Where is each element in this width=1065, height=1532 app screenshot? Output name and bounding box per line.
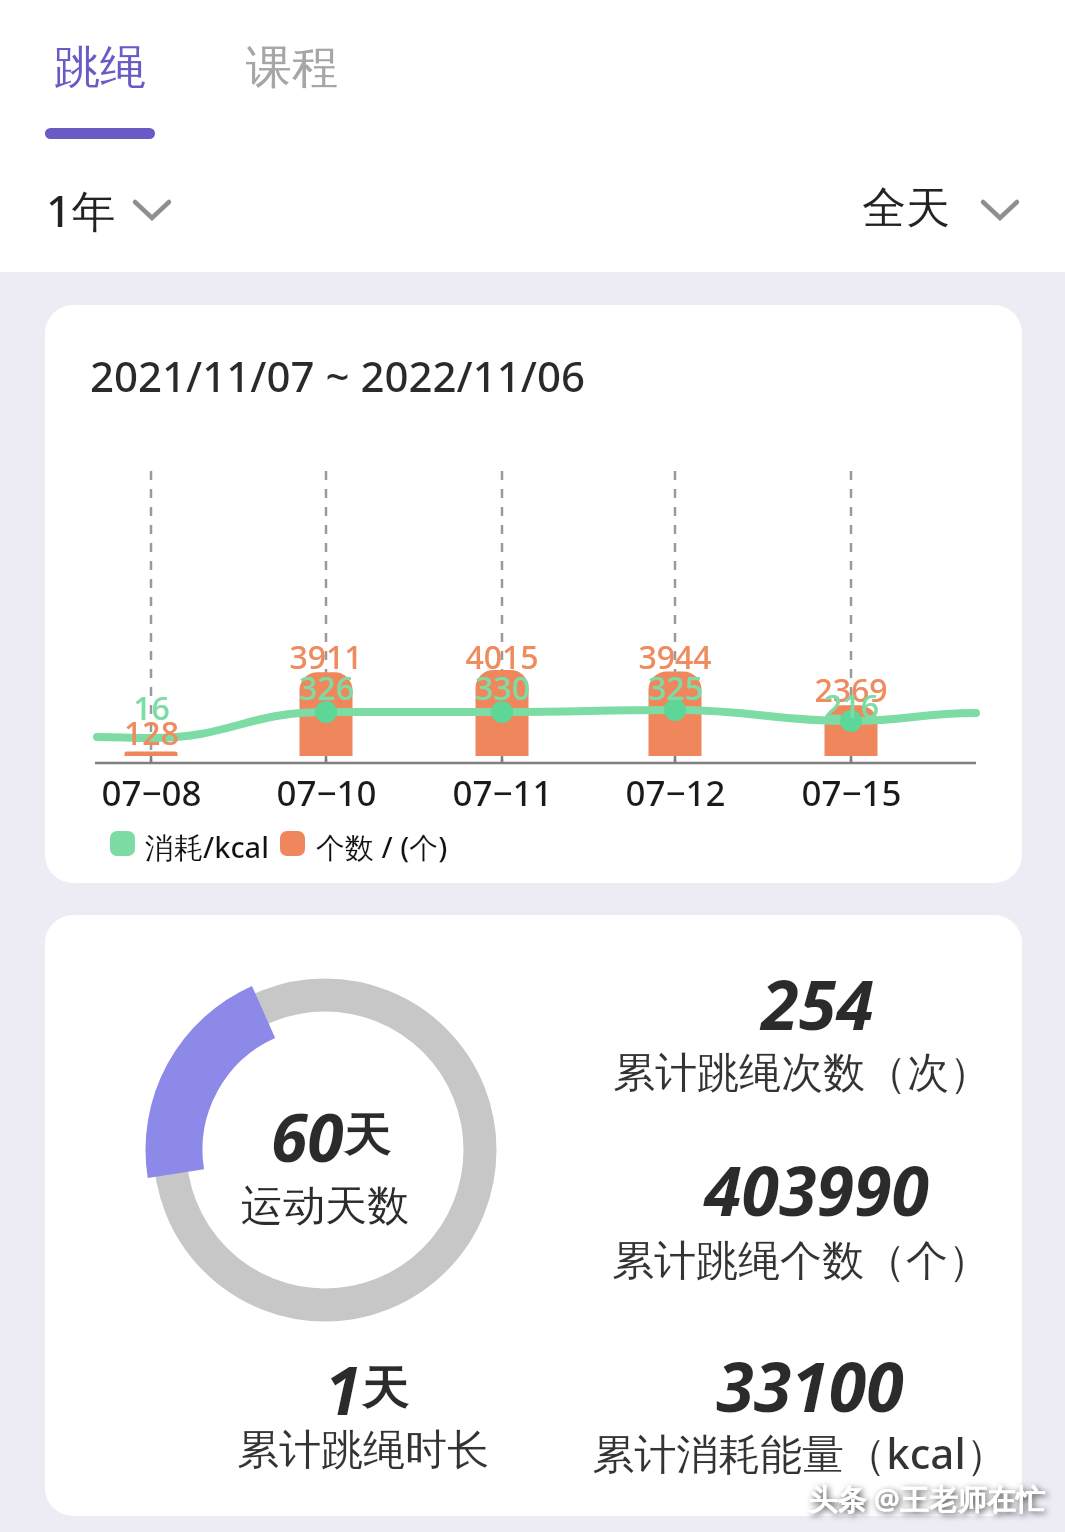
staticText: 课程 [246,39,338,97]
staticText: 累计跳绳个数（个） [612,1235,990,1288]
staticText: 累计跳绳次数（次） [613,1047,991,1100]
staticText: 天 [362,1360,408,1418]
staticText: 累计消耗能量（kcal） [592,1424,1008,1481]
staticText: 403990 [704,1143,929,1236]
staticText: 07−10 [276,769,377,817]
staticText: 1 [325,1344,362,1434]
staticText: 4015 [465,635,539,679]
staticText: 消耗/kcal [145,827,270,867]
staticText: 跳绳 [54,39,146,97]
staticText: 16 [133,686,170,730]
staticText: 33100 [716,1339,904,1432]
staticText: 个数 / (个) [316,827,448,867]
staticText: 天 [344,1107,390,1165]
staticText: 216 [824,684,879,728]
staticText: 2021/11/07 ~ 2022/11/06 [90,347,585,404]
staticText: 3944 [638,635,712,679]
staticText: 07−12 [625,769,726,817]
staticText: 07−15 [801,769,902,817]
staticText: 累计跳绳时长 [237,1424,489,1477]
button[interactable]: 1年 [46,180,116,236]
staticText: 运动天数 [241,1180,409,1233]
staticText: 254 [761,957,874,1050]
staticText: 60 [271,1091,344,1181]
staticText: 头条 @王老师在忙 [808,1479,1045,1519]
button[interactable]: 跳绳 [30,30,170,106]
staticText: 全天 [862,181,950,236]
staticText: 07−11 [452,769,553,817]
staticText: 1年 [46,180,116,236]
button[interactable]: 全天 [862,180,950,236]
staticText: 07−08 [101,769,202,817]
button[interactable]: 课程 [222,30,362,106]
staticText: 330 [475,666,530,710]
staticText: 325 [648,666,703,710]
staticText: 128 [124,711,179,755]
staticText: 2369 [814,668,888,712]
staticText: 3911 [289,635,363,679]
staticText: 326 [299,666,354,710]
